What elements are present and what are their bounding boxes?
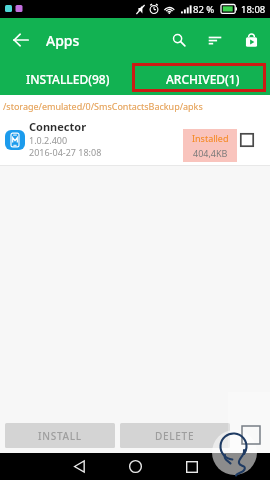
staticText: Connector (29, 119, 87, 134)
button[interactable]: Connector (0, 112, 270, 166)
staticText: 18:08 (241, 3, 266, 16)
button[interactable]: INSTALLED(98) (0, 62, 135, 95)
staticText: INSTALLED(98) (26, 71, 110, 87)
staticText: 404,4KB (193, 147, 228, 159)
staticText: ARCHIVED(1) (166, 71, 240, 87)
staticText: INSTALL (38, 429, 82, 443)
button[interactable]: Select app (236, 129, 258, 151)
staticText: 2016-04-27 18:08 (29, 146, 102, 158)
staticText: /storage/emulated/0/SmsContactsBackup/ap… (3, 100, 203, 112)
button[interactable]: Sort (199, 24, 231, 56)
button[interactable]: Recents (178, 453, 206, 480)
staticText: Installed (192, 132, 229, 144)
button[interactable]: Back (6, 25, 36, 55)
button[interactable]: Search (163, 24, 195, 56)
staticText: 82 % (193, 3, 215, 16)
button[interactable]: Play Store (235, 24, 267, 56)
button[interactable]: ARCHIVED(1) (135, 62, 270, 95)
staticText: DELETE (155, 429, 195, 443)
staticText: 1.0.2.400 (29, 134, 68, 146)
button[interactable]: Home (121, 453, 149, 480)
button[interactable]: Back (65, 453, 93, 480)
button[interactable]: DELETE (120, 423, 230, 448)
button[interactable]: INSTALL (5, 423, 115, 448)
staticText: Apps (46, 31, 80, 50)
